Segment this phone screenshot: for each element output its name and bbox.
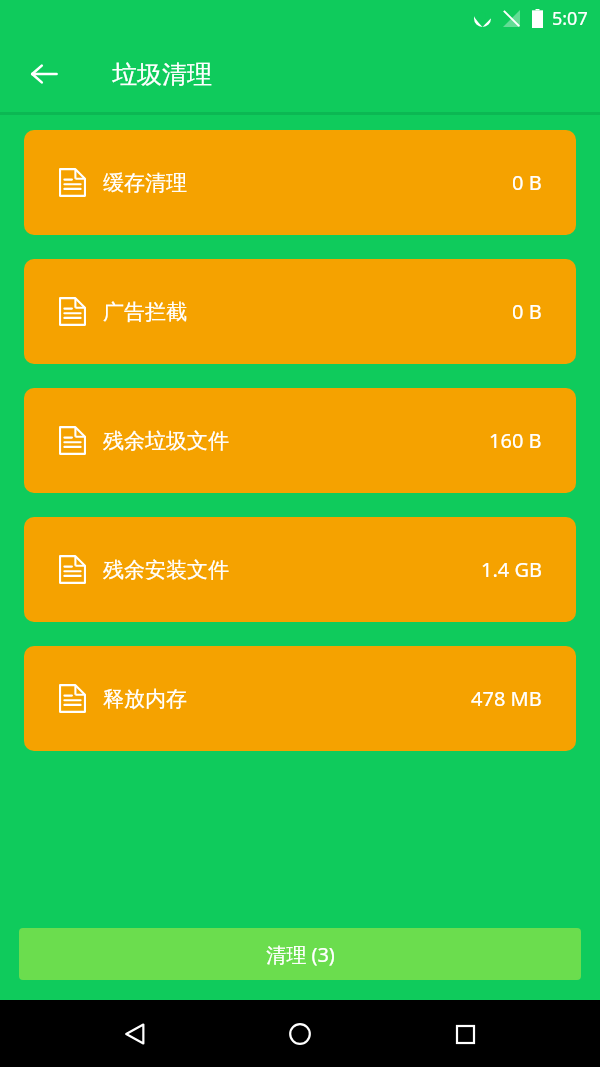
staticText: 清理 (3) (266, 941, 335, 968)
button[interactable]: 缓存清理 (24, 130, 576, 235)
staticText: 0 B (512, 169, 542, 196)
staticText: 160 B (489, 427, 542, 454)
button[interactable]: 残余安装文件 (24, 517, 576, 622)
staticText: 广告拦截 (103, 299, 187, 325)
staticText: 5:07 (552, 6, 588, 31)
staticText: 缓存清理 (103, 170, 187, 196)
staticText: 0 B (512, 298, 542, 325)
staticText: 478 MB (471, 685, 542, 712)
staticText: 残余垃圾文件 (103, 428, 229, 454)
staticText: 释放内存 (103, 686, 187, 712)
button[interactable]: Home (270, 1004, 330, 1064)
staticText: 残余安装文件 (103, 557, 229, 583)
staticText: 垃圾清理 (112, 59, 212, 90)
button[interactable]: Recents (435, 1004, 495, 1064)
button[interactable]: 释放内存 (24, 646, 576, 751)
button[interactable]: 广告拦截 (24, 259, 576, 364)
button[interactable]: Back (105, 1004, 165, 1064)
button[interactable]: 清理 (3) (19, 928, 581, 980)
staticText: 1.4 GB (481, 556, 542, 583)
button[interactable]: 残余垃圾文件 (24, 388, 576, 493)
button[interactable]: Back (20, 50, 68, 98)
